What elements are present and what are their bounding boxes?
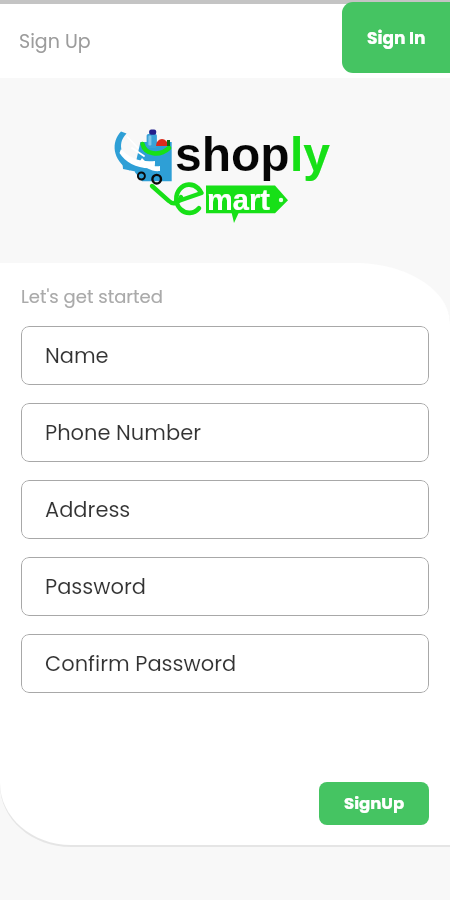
staticText: Confirm Password	[45, 649, 237, 678]
staticText: mart	[207, 184, 270, 216]
staticText: Phone Number	[45, 418, 201, 447]
staticText: Name	[45, 341, 109, 370]
staticText: shop	[175, 128, 290, 182]
button[interactable]: Confirm Password	[21, 634, 429, 693]
staticText: Sign In	[367, 26, 426, 50]
staticText: Password	[45, 572, 146, 601]
button[interactable]: Sign In	[342, 2, 450, 73]
staticText: Let's get started	[21, 284, 163, 309]
button[interactable]: Address	[21, 480, 429, 539]
staticText: SignUp	[344, 792, 405, 815]
staticText: Sign Up	[19, 28, 91, 55]
button[interactable]: Password	[21, 557, 429, 616]
button[interactable]: SignUp	[319, 782, 429, 825]
other: Shoply eMart logo	[108, 120, 348, 240]
button[interactable]: Sign Up	[0, 4, 450, 78]
staticText: ly	[290, 128, 331, 182]
staticText: Address	[45, 495, 131, 524]
button[interactable]: Phone Number	[21, 403, 429, 462]
button[interactable]: Name	[21, 326, 429, 385]
